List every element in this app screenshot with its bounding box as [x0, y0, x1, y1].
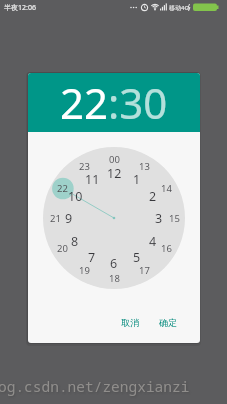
staticText: 20 — [57, 242, 68, 255]
staticText: 13 — [139, 160, 150, 173]
staticText: 18 — [109, 272, 120, 285]
staticText: 19 — [79, 264, 90, 277]
staticText: 00 — [109, 153, 120, 166]
staticText: 7 — [88, 249, 96, 266]
staticText: 9 — [65, 210, 73, 227]
staticText: 8 — [71, 233, 79, 250]
staticText: og.csdn.net/zengxianzi — [0, 376, 190, 396]
staticText: 15 — [169, 212, 180, 225]
button[interactable]: 取消 — [113, 309, 147, 336]
staticText: 12 — [107, 165, 122, 182]
staticText: 10 — [68, 188, 83, 205]
staticText: 确定 — [159, 317, 177, 328]
staticText: 14 — [161, 182, 172, 195]
staticText: 5 — [133, 249, 141, 266]
staticText: 1 — [133, 171, 141, 188]
staticText: 23 — [79, 160, 90, 173]
staticText: 3 — [155, 210, 163, 227]
staticText: 半夜12:06 — [4, 3, 36, 13]
staticText: 6 — [110, 255, 118, 272]
staticText: 17 — [139, 264, 150, 277]
staticText: 22 — [57, 182, 68, 195]
staticText: 取消 — [121, 317, 139, 328]
staticText: 4 — [149, 233, 157, 250]
staticText: 2 — [149, 188, 157, 205]
button[interactable]: 确定 — [151, 309, 185, 336]
staticText: 移动4G — [169, 4, 189, 12]
staticText: 11 — [85, 171, 100, 188]
staticText: 22:30 — [60, 74, 168, 131]
staticText: 21 — [50, 212, 61, 225]
staticText: 16 — [161, 242, 172, 255]
